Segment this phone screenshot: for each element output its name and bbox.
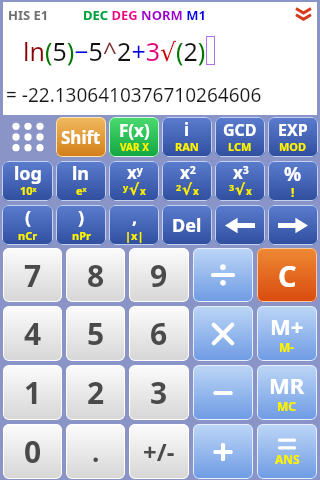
staticText: 3 [150, 372, 168, 413]
staticText: ex [76, 183, 87, 198]
staticText: , [132, 205, 138, 230]
staticText: ANS [275, 451, 300, 467]
button[interactable]: 3 [129, 365, 189, 420]
button[interactable]: x2 [162, 161, 212, 201]
staticText: GCD [223, 119, 257, 141]
staticText: ln [72, 161, 90, 186]
staticText: Shift [61, 126, 101, 149]
staticText: 8 [87, 255, 105, 296]
staticText: 3 [229, 181, 235, 193]
staticText: x [246, 184, 252, 198]
staticText: HIS E1 [8, 6, 49, 24]
button[interactable]: ) [56, 205, 106, 245]
button[interactable]: % [268, 161, 318, 201]
button[interactable]: EXP [268, 117, 318, 157]
staticText: √ [129, 181, 140, 198]
button[interactable]: F(x) [109, 117, 159, 157]
staticText: 6 [150, 313, 168, 354]
staticText: ) [78, 205, 85, 230]
staticText: x [193, 184, 199, 198]
button[interactable]: 6 [129, 306, 189, 361]
staticText: M- [279, 339, 295, 355]
staticText: nPr [72, 228, 91, 243]
staticText: ( [25, 205, 32, 230]
button[interactable]: ( [2, 205, 53, 245]
staticText: 2 [87, 372, 105, 413]
staticText: ! [291, 184, 295, 198]
staticText: i [184, 118, 190, 141]
button[interactable]: Divide [193, 248, 253, 302]
staticText: 7 [24, 255, 42, 296]
staticText: x3 [233, 161, 249, 184]
button[interactable]: 2 [66, 365, 125, 420]
button[interactable]: GCD [215, 117, 265, 157]
button[interactable]: Expand history [295, 7, 312, 22]
staticText: M+ [270, 311, 304, 341]
button[interactable]: Cursor left [215, 205, 265, 245]
button[interactable]: Equals [257, 424, 317, 479]
button[interactable]: Cursor right [268, 205, 318, 245]
staticText: y [123, 181, 129, 193]
staticText: x2 [180, 161, 196, 184]
button[interactable]: MR [257, 365, 317, 420]
button[interactable]: x3 [215, 161, 265, 201]
staticText: VAR X [120, 140, 149, 154]
staticText: 2 [176, 181, 182, 193]
button[interactable]: Plus [193, 424, 253, 479]
button[interactable]: 7 [3, 248, 62, 302]
staticText: EXP [278, 119, 308, 141]
button[interactable]: M+ [257, 306, 317, 361]
button[interactable]: Apps menu [2, 117, 53, 157]
staticText: 1 [24, 372, 42, 413]
staticText: . [92, 434, 100, 469]
button[interactable]: Del [162, 205, 212, 245]
staticText: RAN [175, 139, 199, 154]
staticText: Del [172, 213, 202, 238]
staticText: xy [127, 161, 143, 184]
staticText: ln(5)−5^2+3√(2) [23, 34, 206, 68]
staticText: 10x [20, 183, 37, 198]
button[interactable]: i [162, 117, 212, 157]
staticText: log [14, 161, 42, 186]
button[interactable]: xy [109, 161, 159, 201]
staticText: √ [182, 181, 193, 198]
staticText: LCM [228, 139, 252, 154]
staticText: nCr [18, 228, 38, 243]
button[interactable]: 4 [3, 306, 62, 361]
staticText: √ [235, 181, 246, 198]
button[interactable]: Multiply [193, 306, 253, 361]
staticText: % [284, 161, 302, 187]
button[interactable]: 0 [3, 424, 62, 479]
button[interactable]: ln [56, 161, 106, 201]
button[interactable]: 5 [66, 306, 125, 361]
button[interactable]: log [2, 161, 53, 201]
staticText: C [278, 256, 297, 295]
staticText: +/- [143, 435, 175, 468]
button[interactable]: , [109, 205, 159, 245]
staticText: DEC DEG NORM M1 [83, 6, 206, 24]
button[interactable]: 9 [129, 248, 189, 302]
staticText: MR [269, 370, 305, 400]
staticText: |x| [125, 228, 144, 243]
button[interactable]: 1 [3, 365, 62, 420]
button[interactable]: 8 [66, 248, 125, 302]
button[interactable]: . [66, 424, 125, 479]
staticText: F(x) [119, 119, 150, 142]
staticText: 9 [150, 255, 168, 296]
staticText: x [140, 184, 146, 198]
button[interactable]: Shift [56, 117, 106, 157]
button[interactable]: +/- [129, 424, 189, 479]
button[interactable]: C [257, 248, 317, 302]
staticText: = -22.1306410376710264606 [6, 82, 262, 108]
staticText: 4 [24, 313, 42, 354]
staticText: 0 [24, 431, 42, 472]
button[interactable]: Minus [193, 365, 253, 420]
staticText: MC [277, 398, 297, 414]
staticText: MOD [279, 139, 307, 154]
staticText: 5 [87, 313, 105, 354]
